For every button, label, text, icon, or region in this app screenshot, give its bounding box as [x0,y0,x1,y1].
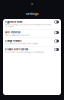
staticText: Choose another default board for new pin… [5,43,38,45]
button[interactable]: Aggressive Mode [3,19,61,29]
staticText: Change Pinboard [5,40,21,42]
staticText: Turn off alerts, sounds and badges from … [5,51,44,53]
button[interactable]: Toggle [54,48,59,51]
staticText: Aggressive Mode [5,21,22,23]
staticText: Only sync while on a known network. [5,34,30,36]
button[interactable]: Disable Notifications [3,46,61,55]
staticText: 9:41 [30,3,33,5]
staticText: WiFi Preferred [5,31,20,34]
button[interactable]: Toggle [54,21,59,23]
staticText: Keeps scanning for nearby beacons even w… [5,24,51,28]
button[interactable]: Toggle [54,31,59,34]
button[interactable]: Toggle [54,40,59,42]
staticText: Settings [26,12,38,16]
button[interactable]: WiFi Preferred [3,29,61,38]
staticText: Disable Notifications [5,48,28,51]
button[interactable]: Change Pinboard [3,38,61,46]
